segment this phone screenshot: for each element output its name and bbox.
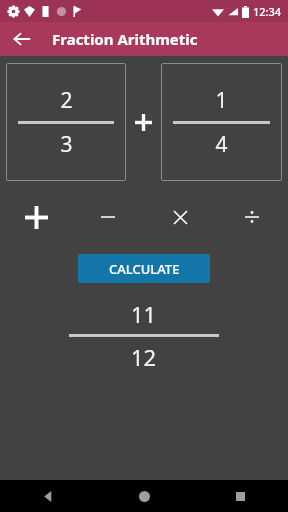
button[interactable]: Plus <box>0 198 72 236</box>
button[interactable]: 1 <box>161 63 282 181</box>
button[interactable]: Recent apps <box>192 480 288 512</box>
button[interactable]: Back <box>8 25 36 53</box>
button[interactable]: Divide <box>216 198 288 236</box>
button[interactable]: 2 <box>6 63 126 181</box>
staticText: 2 <box>60 86 73 115</box>
staticText: Fraction Arithmetic <box>52 29 198 49</box>
staticText: 11 <box>131 299 157 329</box>
staticText: 1 <box>215 86 228 115</box>
button[interactable]: Back <box>0 480 96 512</box>
staticText: 12 <box>131 342 157 372</box>
staticText: 3 <box>60 130 73 159</box>
button[interactable]: CALCULATE <box>78 254 210 283</box>
staticText: CALCULATE <box>109 260 180 278</box>
button[interactable]: Minus <box>72 198 144 236</box>
button[interactable]: Multiply <box>144 198 216 236</box>
staticText: 4 <box>215 130 228 159</box>
staticText: 12:34 <box>253 4 282 19</box>
button[interactable]: Home <box>96 480 192 512</box>
